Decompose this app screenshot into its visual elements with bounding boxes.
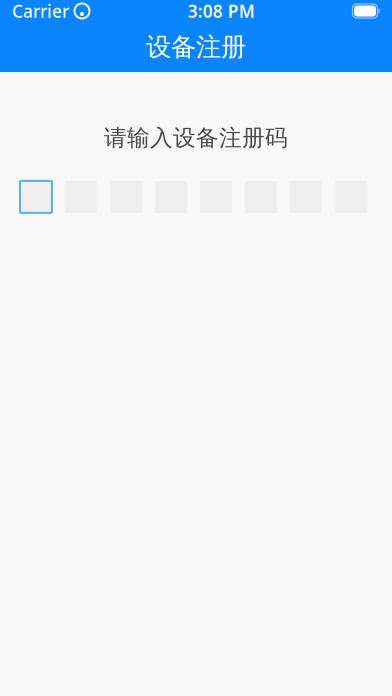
staticText: 请输入设备注册码	[104, 124, 288, 152]
staticText: Carrier	[12, 0, 69, 22]
button[interactable]: Registration code digit 1	[20, 181, 52, 213]
staticText: 设备注册	[146, 31, 246, 62]
staticText: 3:08 PM	[188, 0, 255, 22]
